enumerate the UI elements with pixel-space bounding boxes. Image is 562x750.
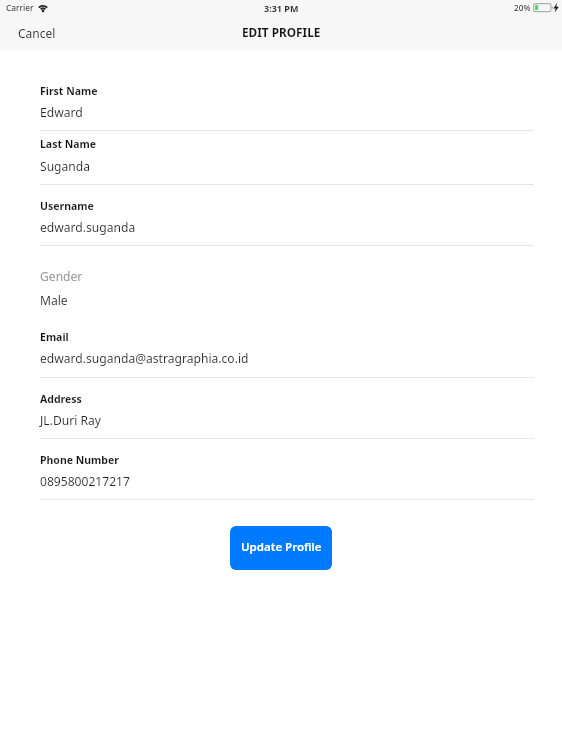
staticText: Address	[40, 392, 82, 406]
staticText: Carrier	[6, 2, 34, 13]
staticText: 0895800217217	[40, 473, 130, 489]
staticText: Username	[40, 199, 94, 213]
staticText: edward.suganda	[40, 219, 136, 235]
staticText: JL.Duri Ray	[40, 412, 101, 428]
staticText: Update Profile	[241, 539, 322, 555]
staticText: Male	[40, 292, 68, 308]
staticText: Last Name	[40, 137, 97, 151]
staticText: First Name	[40, 84, 98, 98]
staticText: Cancel	[18, 25, 56, 41]
staticText: Phone Number	[40, 453, 119, 467]
staticText: 20%	[514, 2, 531, 13]
button[interactable]: Update Profile	[230, 526, 332, 570]
staticText: Email	[40, 330, 69, 344]
staticText: Gender	[40, 268, 83, 284]
staticText: EDIT PROFILE	[242, 24, 321, 40]
button[interactable]: Cancel	[6, 20, 68, 46]
staticText: Suganda	[40, 158, 91, 174]
staticText: edward.suganda@astragraphia.co.id	[40, 350, 249, 366]
staticText: Edward	[40, 104, 83, 120]
staticText: 3:31 PM	[264, 2, 299, 14]
